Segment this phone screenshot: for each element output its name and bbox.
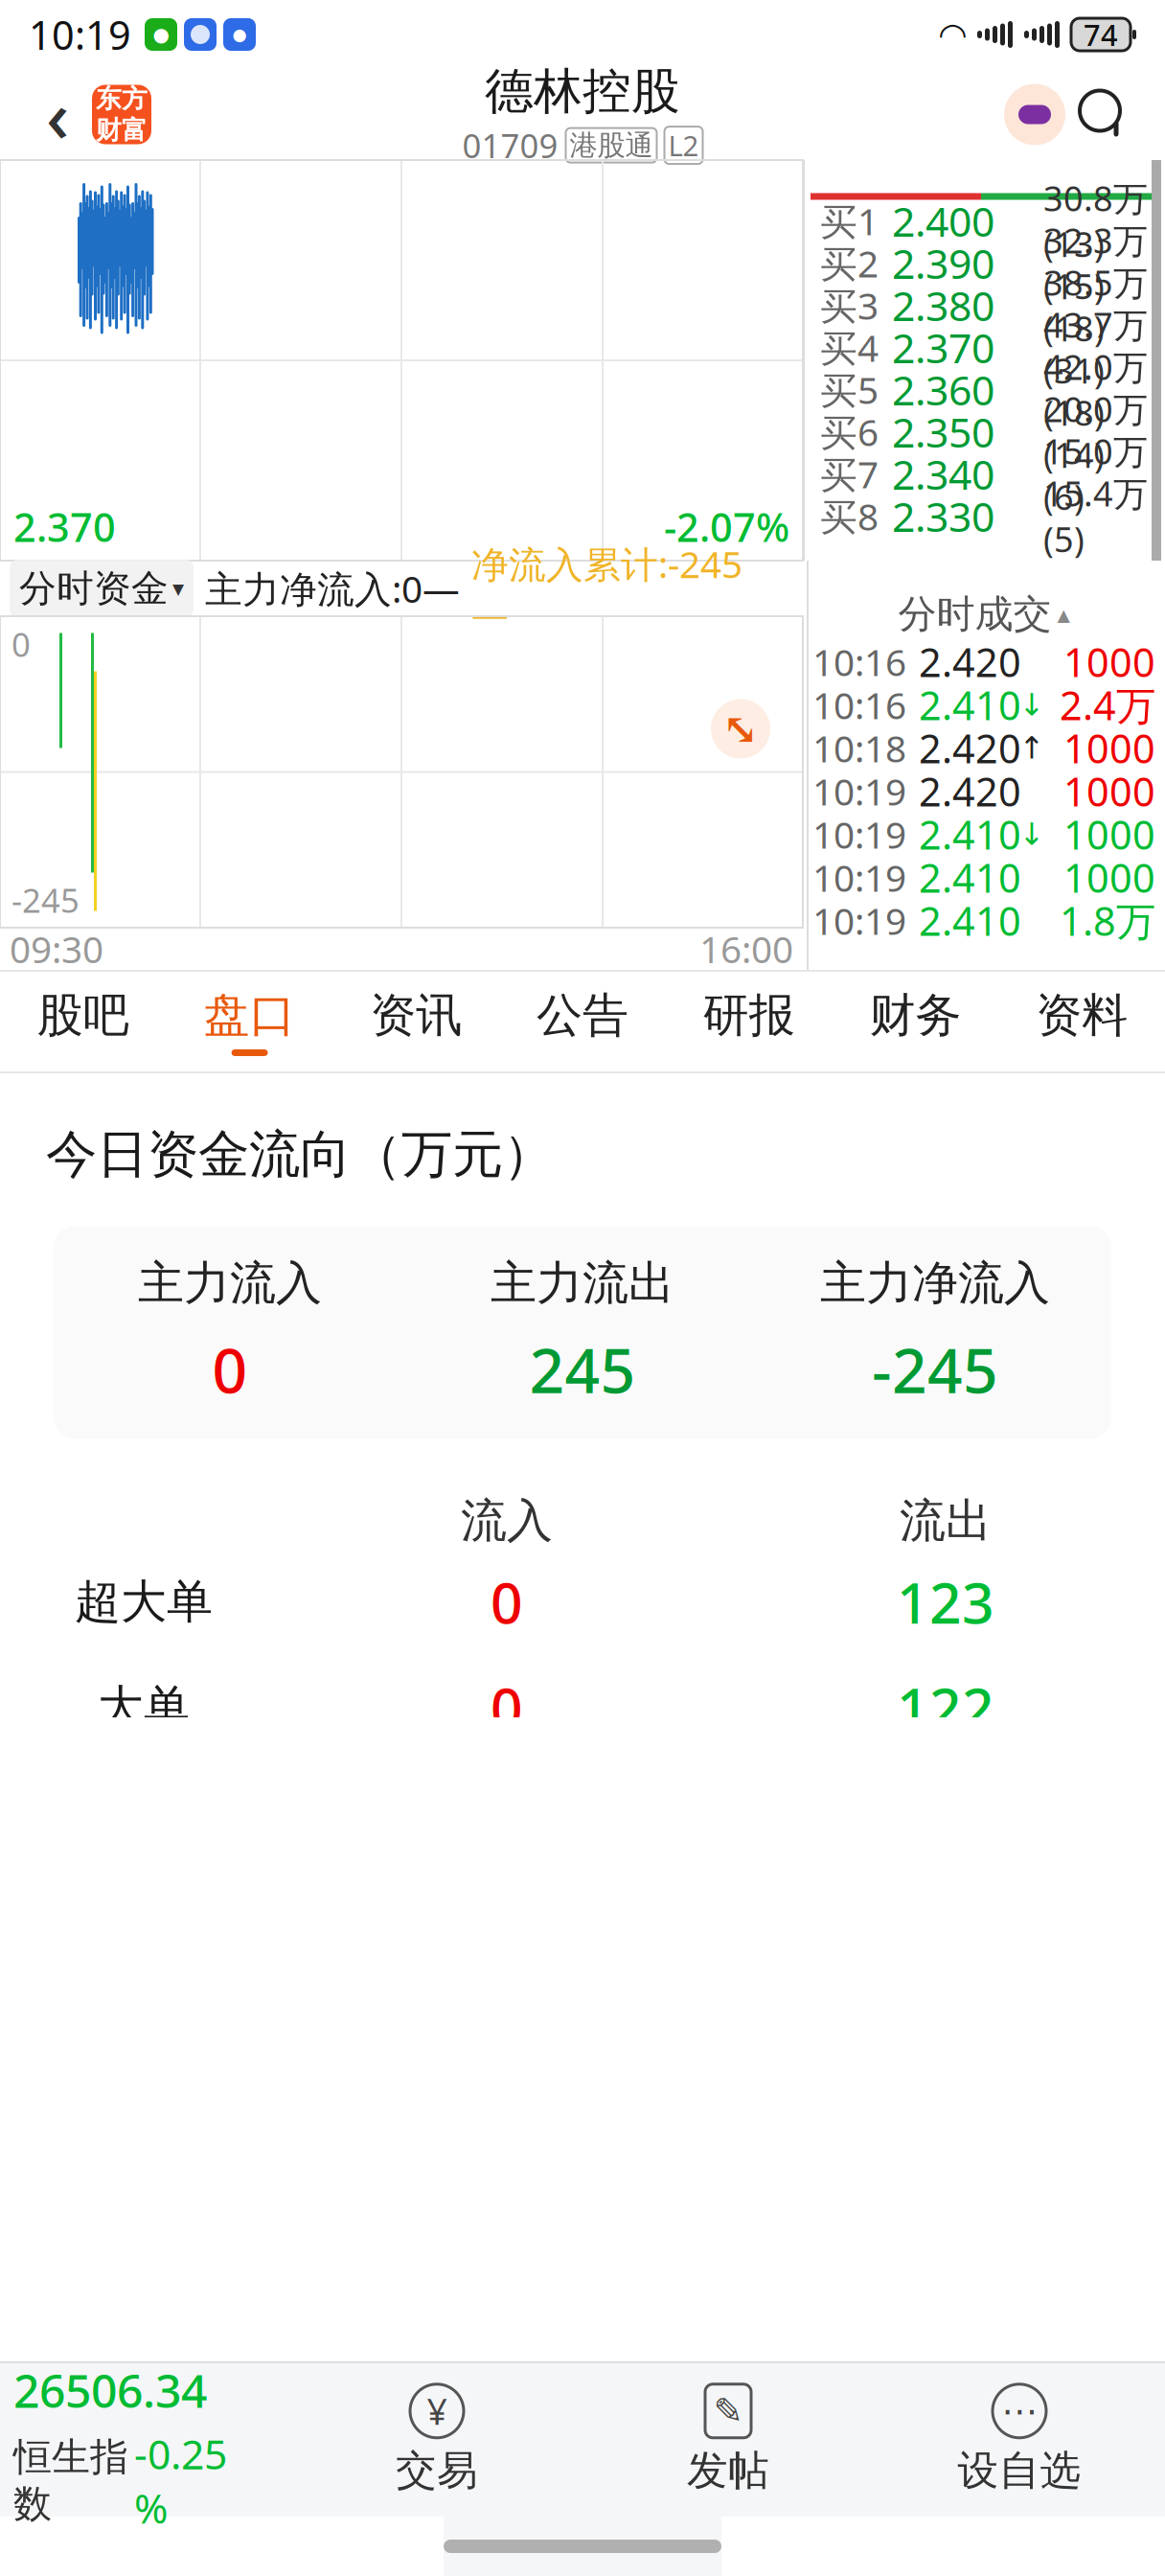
staticText: 1000	[1063, 765, 1155, 817]
button[interactable]: 分时成交	[898, 588, 1070, 640]
button[interactable]: 26506.34	[0, 2359, 291, 2520]
staticText: 2.370	[892, 320, 994, 375]
staticText: 买5	[820, 365, 879, 414]
staticText: -245	[11, 878, 80, 922]
staticText: 主力净流入	[820, 1255, 1050, 1311]
staticText: 2.420	[919, 765, 1021, 817]
staticText: -0.25%	[134, 2426, 227, 2535]
staticText: 股吧	[37, 987, 129, 1044]
button[interactable]: 盘口	[166, 972, 333, 1071]
staticText: ↑	[1019, 731, 1045, 765]
staticText: 流入	[461, 1493, 553, 1549]
staticText: 2.410	[919, 851, 1021, 904]
staticText: 流出	[900, 1493, 992, 1549]
button[interactable]: 买4	[811, 326, 1157, 368]
button[interactable]: 买6	[811, 411, 1157, 453]
staticText: 资讯	[370, 987, 462, 1044]
button[interactable]: 买7	[811, 453, 1157, 495]
staticText: 0	[11, 622, 31, 666]
button[interactable]: 公告	[499, 972, 666, 1071]
button[interactable]: 股吧	[0, 972, 166, 1071]
staticText: ✎	[713, 2391, 743, 2431]
button[interactable]: ⋯	[874, 2384, 1165, 2496]
staticText: 38.5万(18)	[1043, 259, 1148, 351]
staticText: -2.07%	[664, 500, 789, 553]
staticText: ↓	[1019, 687, 1045, 722]
staticText: ●	[153, 24, 169, 45]
staticText: 42.0万(18)	[1043, 344, 1148, 435]
staticText: 2.400	[892, 194, 994, 248]
staticText: 买1	[820, 196, 879, 245]
staticText: ⋯	[1002, 2391, 1037, 2431]
button[interactable]: Expand chart	[711, 699, 770, 759]
staticText: 1000	[1063, 635, 1155, 688]
staticText: 32.3万(15)	[1043, 217, 1148, 309]
staticText: 10:16	[812, 637, 906, 686]
staticText: 245	[529, 1329, 636, 1410]
staticText: -245	[872, 1329, 998, 1410]
staticText: 盘口	[204, 987, 296, 1044]
button[interactable]: ¥	[291, 2384, 582, 2496]
staticText: 主力流出	[491, 1255, 674, 1311]
button[interactable]: 分时资金	[10, 560, 194, 617]
staticText: 0	[491, 1564, 523, 1639]
button[interactable]: 买1	[811, 200, 1157, 242]
button[interactable]: 资料	[999, 972, 1165, 1071]
staticText: 2.410	[919, 808, 1021, 861]
staticText: ‹	[46, 67, 69, 162]
staticText: 港股通	[570, 128, 653, 163]
staticText: 2.420	[919, 635, 1021, 688]
staticText: 09:30	[10, 924, 103, 973]
staticText: 主力净流入:0—	[205, 564, 460, 613]
button[interactable]: 买2	[811, 242, 1157, 284]
staticText: 10:16	[812, 680, 906, 729]
staticText: 2.350	[892, 405, 994, 459]
staticText: 资料	[1036, 987, 1128, 1044]
button[interactable]: Search	[1065, 76, 1142, 153]
staticText: 16:00	[699, 924, 793, 973]
button[interactable]: AI assistant	[1004, 84, 1065, 145]
staticText: 发帖	[687, 2445, 769, 2496]
staticText: 主力流入	[138, 1255, 322, 1311]
staticText: 设自选	[958, 2445, 1081, 2496]
staticText: 43.7万(31)	[1043, 302, 1148, 393]
button[interactable]: 财务	[832, 972, 999, 1071]
staticText: 1000	[1063, 808, 1155, 861]
button[interactable]: 东方财富	[92, 85, 151, 144]
button[interactable]: 买3	[811, 284, 1157, 326]
staticText: 买6	[820, 407, 879, 456]
button[interactable]: ✎	[582, 2384, 874, 2496]
staticText: 净流入累计:-245—	[471, 539, 742, 638]
staticText: 2.380	[892, 278, 994, 332]
staticText: 买8	[820, 491, 879, 541]
staticText: 买4	[820, 323, 879, 372]
staticText: 10:19	[812, 766, 906, 816]
staticText: ◠	[940, 16, 966, 53]
staticText: 买3	[820, 281, 879, 330]
staticText: 26506.34	[13, 2359, 207, 2420]
staticText: ▴	[1057, 600, 1070, 629]
staticText: 2.340	[892, 447, 994, 501]
staticText: 122	[897, 1670, 994, 1745]
staticText: 交易	[396, 2445, 478, 2496]
button[interactable]: 资讯	[333, 972, 499, 1071]
button[interactable]: 研报	[666, 972, 832, 1071]
staticText: 2.410	[919, 679, 1021, 731]
button[interactable]: Back	[23, 76, 92, 153]
staticText: 10:19	[812, 810, 906, 859]
button[interactable]: 买5	[811, 368, 1157, 411]
staticText: 买2	[820, 238, 879, 288]
staticText: 2.4万	[1060, 679, 1155, 731]
staticText: 10:19	[812, 896, 906, 945]
button[interactable]: 买8	[811, 495, 1157, 537]
staticText: 74	[1084, 15, 1118, 54]
staticText: 2.370	[13, 500, 116, 553]
staticText: L2	[668, 127, 699, 164]
staticText: 2.360	[892, 362, 994, 417]
